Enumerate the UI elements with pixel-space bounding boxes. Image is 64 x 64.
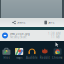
staticText: 11 MB bbox=[51, 35, 60, 39]
staticText: SHARE bbox=[17, 21, 25, 24]
button[interactable]: Audible bbox=[26, 48, 38, 59]
staticText: Audible bbox=[26, 56, 38, 59]
staticText: Nearby Share bbox=[10, 35, 27, 39]
staticText: SAVE bbox=[48, 21, 54, 24]
button[interactable]: Reddit bbox=[38, 48, 51, 59]
staticText: Chrome bbox=[52, 56, 63, 59]
button[interactable]: Maps bbox=[13, 48, 26, 59]
button[interactable]: SHARE bbox=[12, 20, 25, 25]
button[interactable]: Chrome bbox=[51, 48, 64, 59]
button[interactable]: Files bbox=[0, 48, 13, 59]
staticText: Reddit bbox=[40, 56, 50, 59]
staticText: Files bbox=[3, 56, 9, 59]
button[interactable]: SAVE bbox=[44, 20, 54, 25]
staticText: IMG_2048.jpg bbox=[10, 32, 30, 35]
staticText: 1:38 AM bbox=[48, 32, 60, 35]
staticText: Maps bbox=[16, 56, 22, 59]
